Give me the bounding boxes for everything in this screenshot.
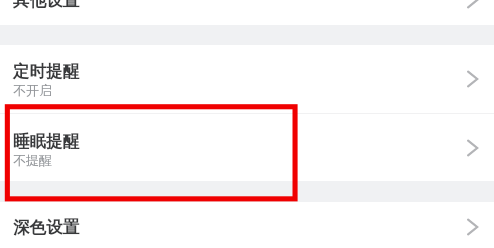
button[interactable]: 定时提醒 (0, 45, 494, 113)
staticText: 深色设置 (13, 217, 79, 238)
other: 打开睡眠提醒 (466, 139, 479, 157)
other: 打开定时提醒 (466, 70, 479, 88)
staticText: 睡眠提醒 (13, 131, 79, 152)
staticText: 不开启 (13, 82, 52, 98)
staticText: 定时提醒 (13, 61, 79, 82)
button[interactable]: 深色设置 (0, 202, 494, 248)
staticText: 不提醒 (13, 152, 52, 168)
button[interactable]: 其他设置 (0, 0, 494, 25)
other: 打开深色设置 (466, 218, 479, 236)
button[interactable]: 睡眠提醒 (0, 114, 494, 181)
staticText: 其他设置 (13, 0, 79, 11)
other: 打开其他设置 (466, 0, 479, 9)
